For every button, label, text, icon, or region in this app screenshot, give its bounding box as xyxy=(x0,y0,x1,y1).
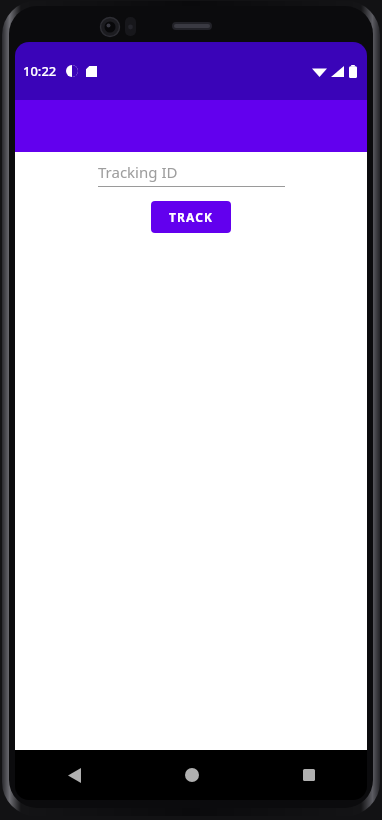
staticText: TRACK xyxy=(169,209,214,225)
button[interactable]: Back xyxy=(15,750,133,800)
button[interactable]: Tracking ID xyxy=(98,160,285,187)
staticText: 10:22 xyxy=(23,62,57,80)
button[interactable]: Home xyxy=(133,750,250,800)
button[interactable]: TRACK xyxy=(151,201,231,233)
button[interactable]: Recent apps xyxy=(250,750,367,800)
staticText: Tracking ID xyxy=(98,162,178,182)
